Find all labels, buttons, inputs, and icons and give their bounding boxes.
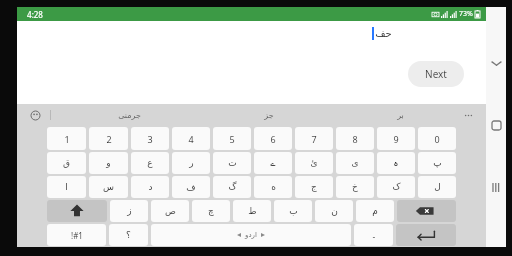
staticText: ق: [63, 158, 70, 168]
button[interactable]: 2: [89, 127, 128, 150]
staticText: چ: [208, 206, 214, 216]
button[interactable]: 7: [295, 127, 333, 150]
button[interactable]: ن: [315, 200, 353, 222]
button[interactable]: ج: [295, 176, 333, 198]
button[interactable]: پ: [418, 152, 456, 174]
button[interactable]: 6: [254, 127, 292, 150]
staticText: خ: [352, 182, 358, 192]
button[interactable]: Hide keyboard: [487, 54, 505, 72]
button[interactable]: جرمنی: [113, 109, 146, 122]
staticText: 6: [270, 133, 276, 145]
button[interactable]: 4: [172, 127, 210, 150]
staticText: ے: [270, 158, 276, 168]
button[interactable]: Enter: [396, 224, 456, 246]
button[interactable]: ل: [418, 176, 456, 198]
staticText: 4:28: [27, 9, 43, 20]
button[interactable]: چ: [192, 200, 230, 222]
staticText: ه: [271, 182, 276, 192]
staticText: س: [103, 182, 114, 192]
button[interactable]: ت: [213, 152, 251, 174]
staticText: ہ: [393, 158, 399, 168]
button[interactable]: Home: [487, 116, 505, 134]
button[interactable]: ئ: [295, 152, 333, 174]
button[interactable]: Recent apps: [487, 178, 505, 196]
button[interactable]: ؟: [109, 224, 148, 246]
button[interactable]: ه: [254, 176, 292, 198]
staticText: Next: [425, 67, 447, 81]
button[interactable]: ع: [131, 152, 169, 174]
button[interactable]: و: [89, 152, 128, 174]
button[interactable]: 9: [377, 127, 415, 150]
staticText: ا: [65, 182, 68, 192]
staticText: 9: [393, 133, 399, 145]
staticText: 2: [106, 133, 112, 145]
button[interactable]: 0: [418, 127, 456, 150]
staticText: گ: [228, 182, 237, 192]
staticText: د: [148, 182, 153, 192]
button[interactable]: !#1: [47, 224, 106, 246]
button[interactable]: ب: [274, 200, 312, 222]
button[interactable]: بر: [392, 109, 409, 122]
button[interactable]: ف: [172, 176, 210, 198]
button[interactable]: د: [131, 176, 169, 198]
button[interactable]: ۔: [354, 224, 393, 246]
button[interactable]: ز: [110, 200, 148, 222]
button[interactable]: اردو: [151, 224, 351, 246]
button[interactable]: گ: [213, 176, 251, 198]
button[interactable]: Shift: [47, 200, 107, 222]
staticText: حف: [375, 28, 392, 40]
staticText: ل: [434, 182, 441, 192]
staticText: ب: [289, 206, 298, 216]
staticText: ج: [311, 182, 317, 192]
staticText: 5: [229, 133, 235, 145]
staticText: 0: [434, 133, 440, 145]
staticText: ز: [127, 206, 132, 216]
staticText: ک: [392, 182, 401, 192]
staticText: ت: [228, 158, 237, 168]
staticText: جرمنی: [118, 111, 141, 120]
button[interactable]: ط: [233, 200, 271, 222]
staticText: اردو: [245, 231, 257, 239]
button[interactable]: 3: [131, 127, 169, 150]
staticText: 3: [147, 133, 153, 145]
staticText: و: [106, 158, 111, 168]
staticText: ع: [147, 158, 153, 168]
button[interactable]: ی: [336, 152, 374, 174]
staticText: 4: [188, 133, 194, 145]
staticText: 1: [64, 133, 70, 145]
button[interactable]: س: [89, 176, 128, 198]
button[interactable]: ہ: [377, 152, 415, 174]
staticText: ط: [248, 206, 257, 216]
staticText: 73%: [459, 9, 473, 19]
staticText: پ: [433, 158, 442, 168]
button[interactable]: Next: [408, 61, 464, 87]
button[interactable]: ا: [47, 176, 86, 198]
staticText: 7: [311, 133, 317, 145]
staticText: ف: [186, 182, 196, 192]
staticText: م: [372, 206, 378, 216]
button[interactable]: جز: [259, 109, 279, 122]
button[interactable]: م: [356, 200, 394, 222]
button[interactable]: ق: [47, 152, 86, 174]
staticText: بر: [397, 111, 404, 120]
staticText: جز: [264, 111, 274, 120]
button[interactable]: 5: [213, 127, 251, 150]
staticText: ن: [331, 206, 338, 216]
staticText: ؟: [126, 230, 131, 240]
button[interactable]: Backspace: [397, 200, 456, 222]
button[interactable]: ے: [254, 152, 292, 174]
button[interactable]: ص: [151, 200, 189, 222]
staticText: ر: [189, 158, 194, 168]
staticText: 8: [352, 133, 358, 145]
button[interactable]: 1: [47, 127, 86, 150]
button[interactable]: Emoji: [27, 107, 43, 123]
staticText: ص: [165, 206, 176, 216]
button[interactable]: ک: [377, 176, 415, 198]
button[interactable]: More suggestions: [460, 107, 476, 123]
staticText: ئ: [310, 158, 318, 168]
button[interactable]: ر: [172, 152, 210, 174]
button[interactable]: خ: [336, 176, 374, 198]
staticText: ۔: [371, 230, 377, 240]
staticText: ی: [351, 158, 359, 168]
button[interactable]: 8: [336, 127, 374, 150]
